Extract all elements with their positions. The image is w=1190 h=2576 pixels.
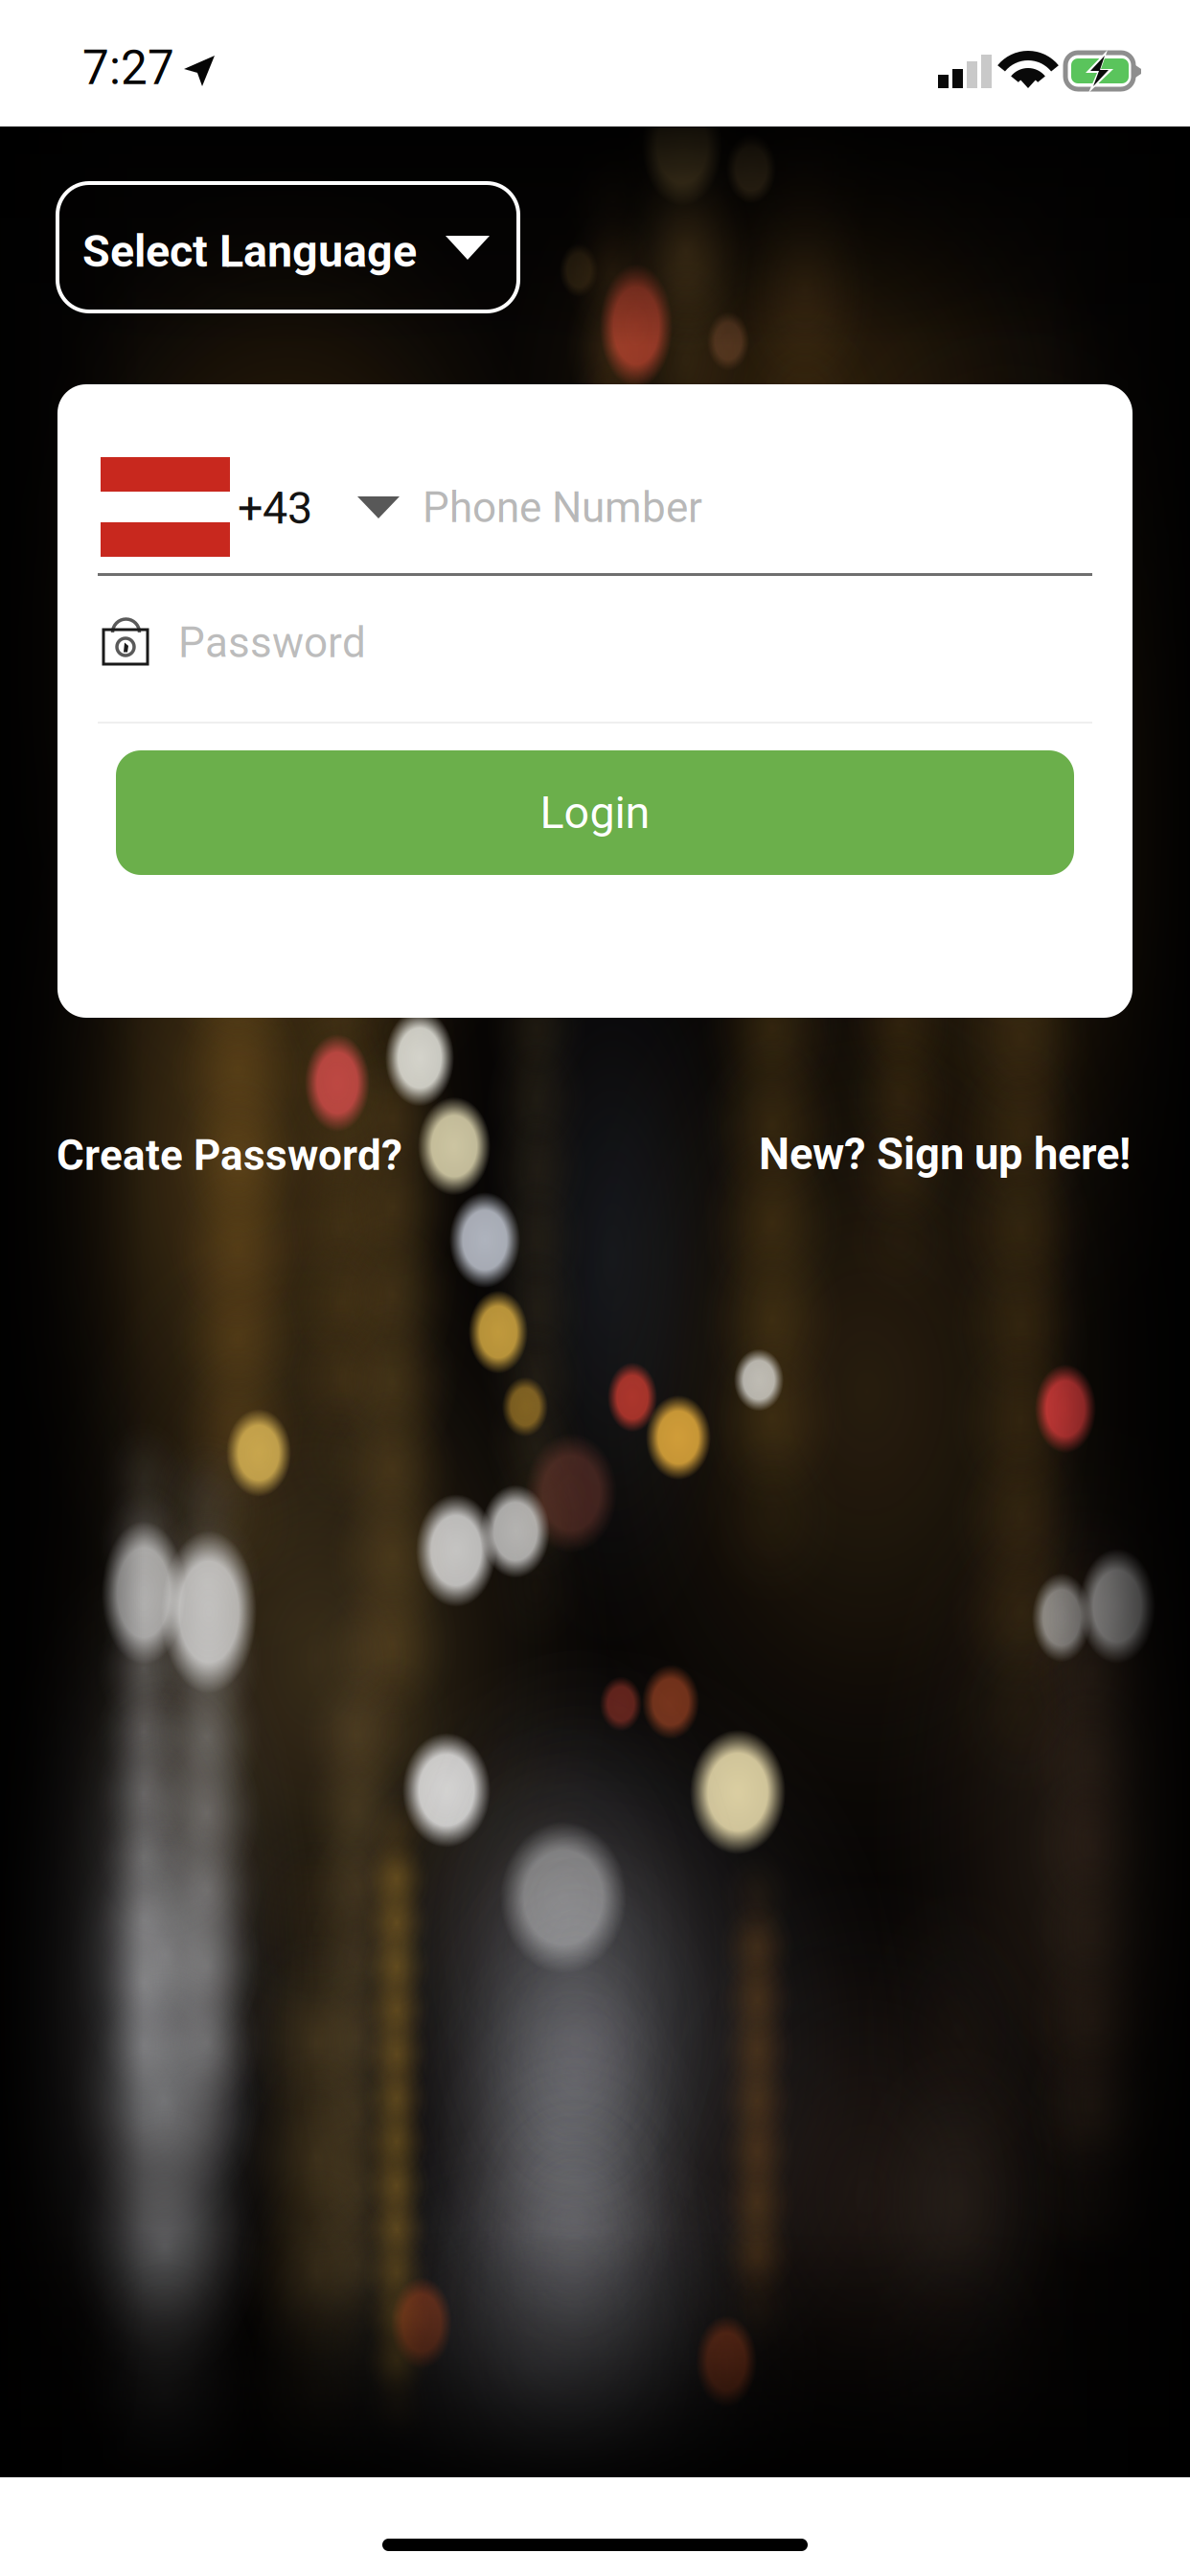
button[interactable]: New? Sign up here!: [759, 1129, 1131, 1180]
button[interactable]: Select Language: [57, 183, 518, 311]
staticText: Password: [178, 618, 366, 668]
staticText: New? Sign up here!: [759, 1129, 1131, 1180]
staticText: Create Password?: [57, 1131, 402, 1180]
button[interactable]: Create Password?: [57, 1131, 402, 1180]
staticText: Login: [540, 787, 650, 839]
button[interactable]: Login: [116, 750, 1074, 875]
staticText: 7:27: [82, 40, 174, 96]
staticText: Select Language: [82, 225, 417, 278]
staticText: +43: [238, 482, 312, 534]
staticText: Phone Number: [423, 483, 702, 532]
